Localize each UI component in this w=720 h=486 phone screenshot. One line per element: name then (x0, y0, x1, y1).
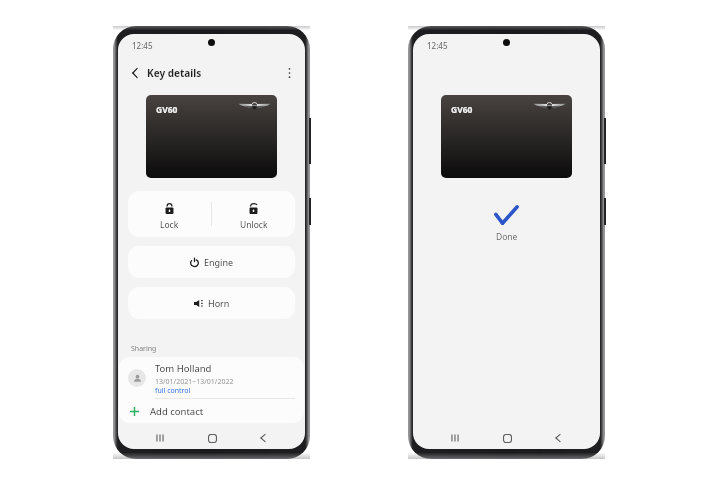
staticText: GV60 (156, 104, 178, 116)
staticText: Engine (204, 256, 234, 268)
button[interactable]: Back (547, 427, 569, 449)
button[interactable]: More options (279, 62, 299, 84)
button[interactable]: Recents (149, 427, 171, 449)
button[interactable]: Engine (128, 246, 295, 278)
staticText: 13/01/2021~13/01/2022 (155, 377, 234, 387)
staticText: Key details (147, 66, 202, 80)
staticText: Tom Holland (155, 362, 212, 375)
button[interactable]: Horn (128, 287, 295, 319)
button[interactable]: Tom Holland (119, 357, 304, 398)
staticText: 12:45 (132, 40, 153, 51)
button[interactable]: Unlock (212, 191, 295, 237)
button[interactable]: Back (252, 427, 274, 449)
staticText: Unlock (240, 219, 268, 231)
button[interactable]: Home (201, 427, 223, 449)
button[interactable]: Back (125, 62, 145, 84)
button[interactable]: Lock (128, 191, 211, 237)
button[interactable]: Home (496, 427, 518, 449)
button[interactable]: Add contact (119, 399, 304, 423)
staticText: Done (496, 231, 518, 243)
staticText: 12:45 (427, 40, 448, 51)
button[interactable]: Recents (444, 427, 466, 449)
staticText: GV60 (451, 104, 473, 116)
staticText: Add contact (150, 405, 204, 418)
staticText: Lock (160, 219, 179, 231)
staticText: Horn (208, 297, 230, 309)
staticText: Sharing (131, 344, 157, 354)
staticText: full control (155, 386, 191, 396)
